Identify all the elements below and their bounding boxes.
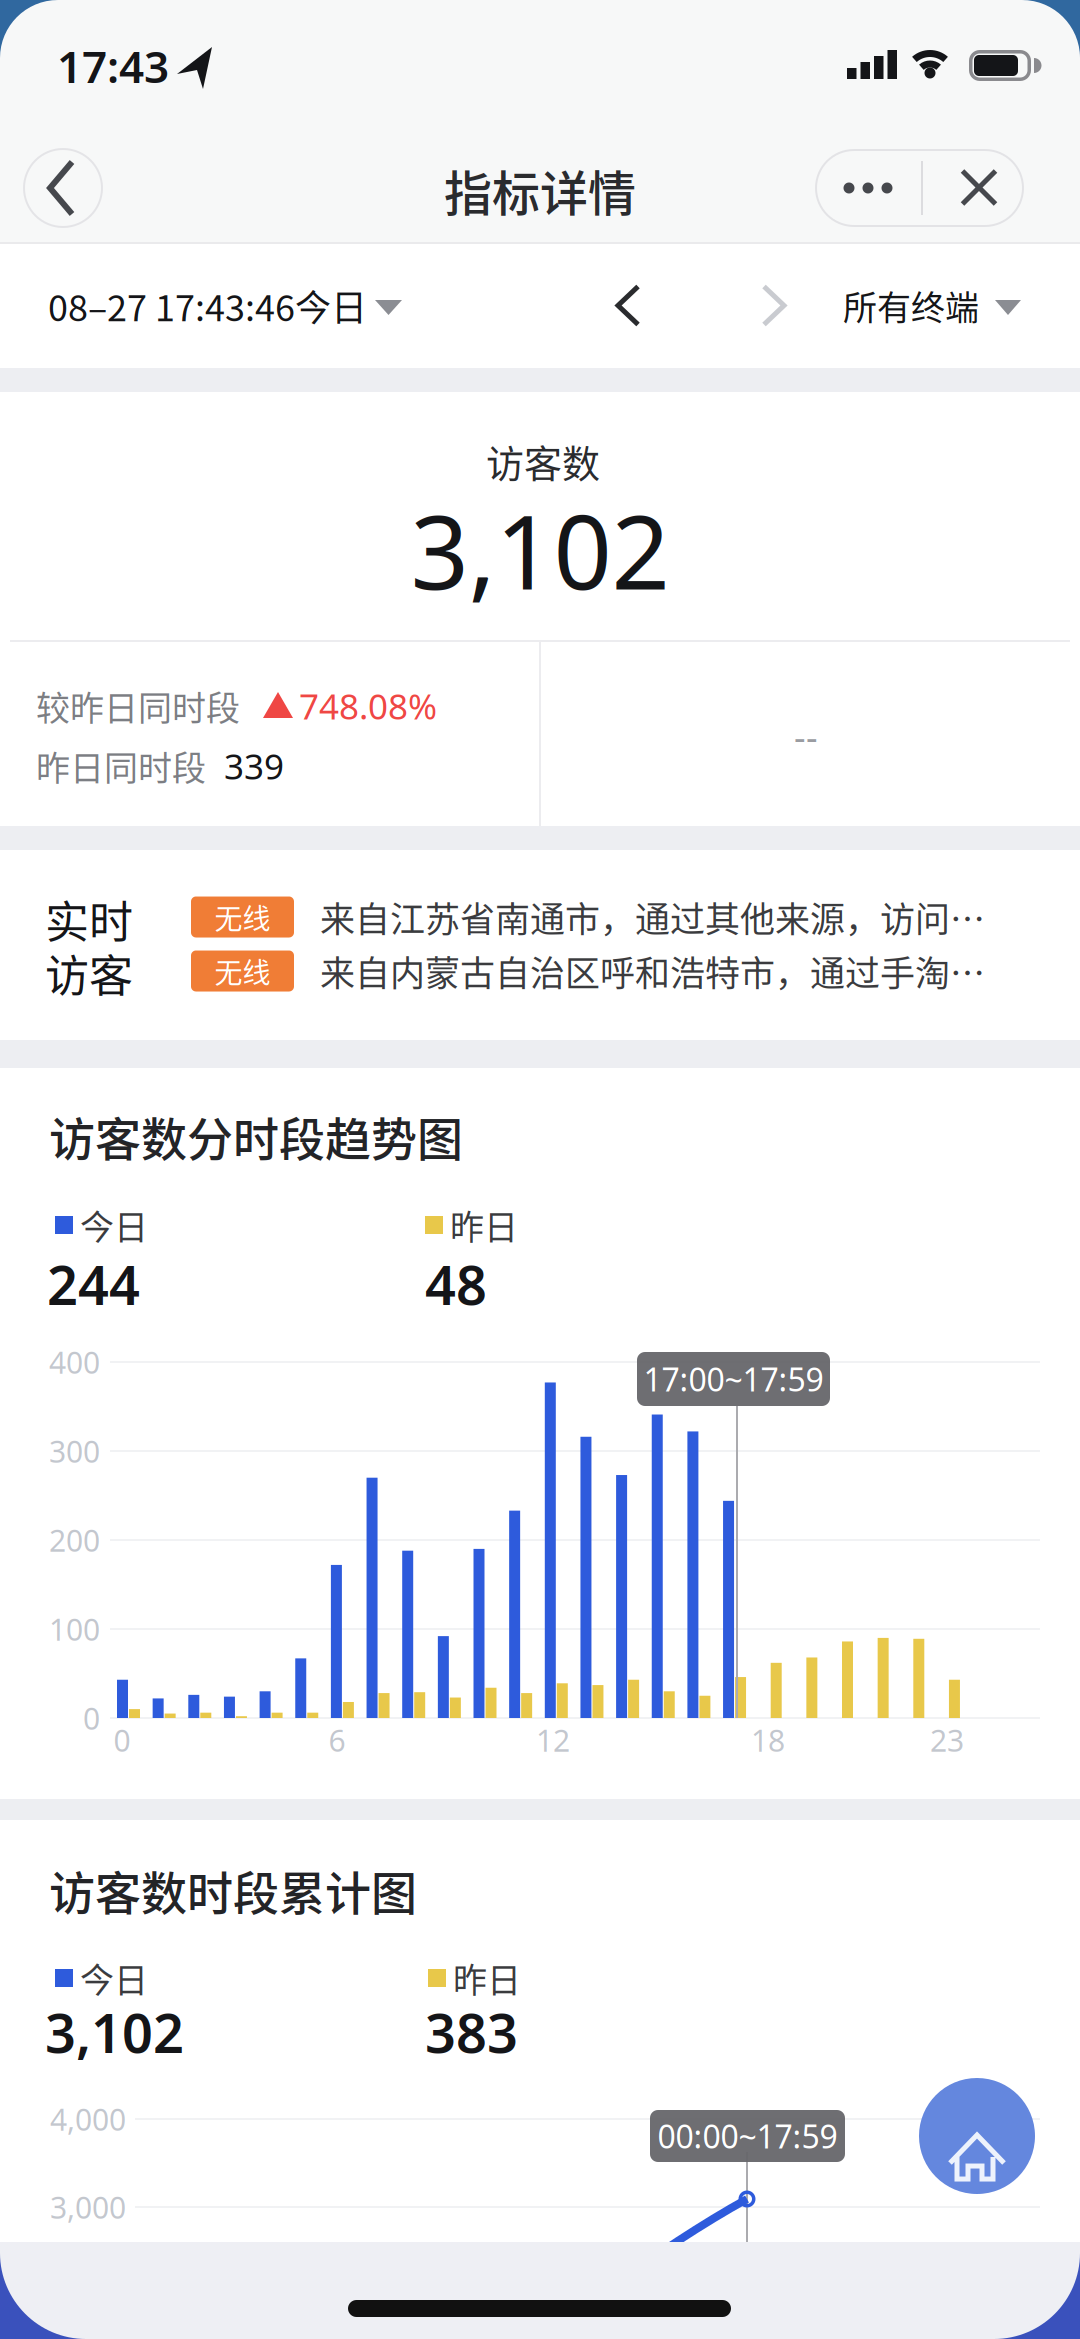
staticText: 748.08%: [299, 682, 437, 730]
staticText: 244: [47, 1247, 140, 1321]
staticText: 来自江苏省南通市，通过其他来源，访问…: [320, 892, 985, 942]
staticText: 所有终端: [843, 281, 979, 330]
staticText: 0: [83, 1698, 100, 1738]
staticText: 较昨日同时段: [36, 681, 240, 731]
button[interactable]: Back: [23, 148, 103, 228]
staticText: 访客数: [486, 433, 600, 488]
staticText: 无线: [214, 951, 270, 991]
staticText: 383: [425, 1995, 518, 2069]
button[interactable]: Close: [926, 149, 1019, 227]
staticText: 访客数分时段趋势图: [49, 1103, 463, 1169]
staticText: 实时: [45, 887, 133, 951]
staticText: 昨日: [450, 1200, 518, 1250]
staticText: 今日: [80, 1953, 148, 2003]
staticText: 48: [425, 1247, 487, 1321]
staticText: 昨日: [453, 1953, 521, 2003]
staticText: 23: [930, 1720, 964, 1760]
staticText: 访客数时段累计图: [49, 1857, 417, 1923]
staticText: 4,000: [50, 2099, 126, 2139]
staticText: 18: [751, 1720, 785, 1760]
button[interactable]: Next: [726, 262, 790, 348]
staticText: 来自内蒙古自治区呼和浩特市，通过手淘…: [320, 946, 985, 996]
staticText: 昨日同时段: [36, 741, 206, 791]
staticText: 6: [328, 1720, 345, 1760]
button[interactable]: Home: [919, 2078, 1035, 2194]
button[interactable]: Realtime visitor 2: [191, 948, 1080, 993]
staticText: 访客: [45, 941, 133, 1005]
staticText: --: [794, 711, 818, 760]
staticText: 339: [224, 742, 284, 790]
staticText: 3,102: [410, 480, 669, 619]
staticText: 今日: [80, 1200, 148, 1250]
staticText: 08–27 17:43:46今日: [48, 279, 367, 331]
button[interactable]: All terminals: [843, 243, 1023, 368]
button[interactable]: Realtime visitor 1: [191, 894, 1080, 939]
staticText: 00:00~17:59: [657, 2114, 837, 2158]
staticText: 3,102: [45, 1995, 184, 2069]
staticText: 300: [49, 1431, 100, 1471]
staticText: 指标详情: [444, 155, 636, 225]
staticText: 无线: [214, 897, 270, 937]
button[interactable]: Select date: [48, 243, 408, 368]
staticText: 100: [49, 1609, 100, 1649]
staticText: 17:43: [57, 36, 169, 96]
staticText: 12: [536, 1720, 570, 1760]
button[interactable]: Previous: [612, 262, 676, 348]
staticText: 0: [113, 1720, 130, 1760]
staticText: 3,000: [50, 2187, 126, 2227]
staticText: 400: [49, 1342, 100, 1382]
staticText: 200: [49, 1520, 100, 1560]
staticText: 17:00~17:59: [643, 1357, 823, 1401]
button[interactable]: More: [815, 149, 919, 227]
